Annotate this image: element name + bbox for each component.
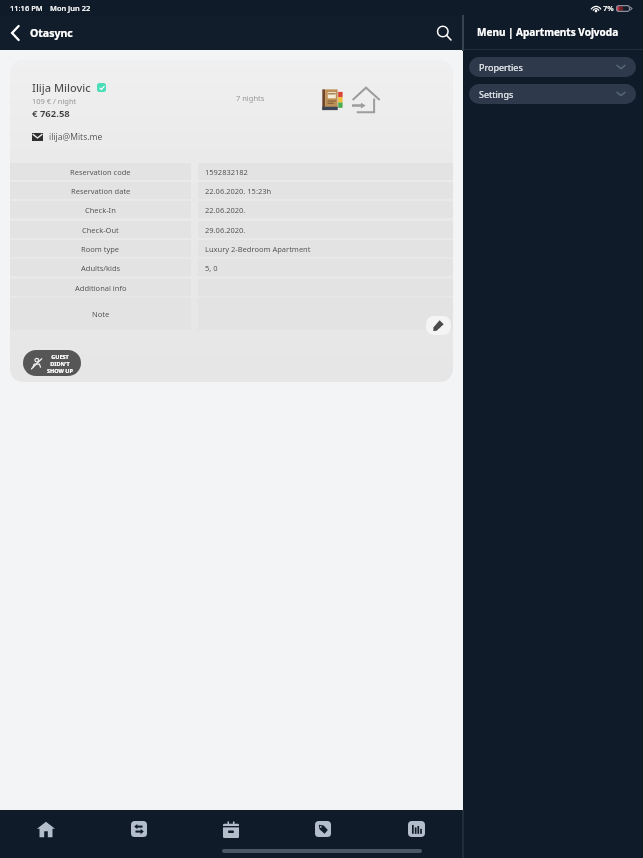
button[interactable]: Statistics <box>393 811 439 847</box>
staticText: Room type <box>81 244 120 254</box>
button[interactable]: GUEST <box>23 350 81 376</box>
button[interactable]: Back <box>0 16 30 50</box>
button[interactable]: Properties <box>469 57 636 77</box>
button[interactable]: Calendar <box>208 811 254 847</box>
staticText: Luxury 2-Bedroom Apartment <box>205 244 311 254</box>
staticText: Additional info <box>75 283 127 293</box>
staticText: Check-Out <box>82 225 119 235</box>
staticText: Menu | Apartments Vojvoda <box>477 25 619 39</box>
staticText: Otasync <box>30 26 73 40</box>
staticText: 5, 0 <box>205 263 218 273</box>
staticText: Settings <box>479 88 514 100</box>
staticText: Note <box>92 309 110 319</box>
staticText: 11:16 PM <box>10 3 43 13</box>
button[interactable]: Prices <box>300 811 346 847</box>
button[interactable]: Search <box>425 16 463 50</box>
staticText: 22.06.2020. <box>205 205 246 215</box>
staticText: Ilija Milovic <box>32 80 91 95</box>
staticText: Adults/kids <box>81 263 121 273</box>
staticText: SHOW UP <box>47 367 73 374</box>
staticText: 7% <box>603 3 614 13</box>
staticText: Reservation date <box>71 186 131 196</box>
button[interactable]: Edit note <box>426 316 451 335</box>
staticText: 29.06.2020. <box>205 225 246 235</box>
staticText: Mon Jun 22 <box>50 3 91 13</box>
staticText: Reservation code <box>70 167 131 177</box>
button[interactable]: Home <box>23 811 69 847</box>
staticText: € 762.58 <box>32 107 70 120</box>
staticText: ilija@Mits.me <box>49 131 103 143</box>
button[interactable]: Settings <box>469 84 636 104</box>
staticText: 1592832182 <box>205 167 248 177</box>
staticText: DIDN'T <box>50 360 70 367</box>
staticText: Properties <box>479 61 523 73</box>
staticText: GUEST <box>51 353 69 360</box>
button[interactable]: Sync <box>116 811 162 847</box>
staticText: Check-In <box>85 205 116 215</box>
staticText: 22.06.2020. 15:23h <box>205 186 272 196</box>
staticText: 109 € / night <box>32 96 77 106</box>
staticText: 7 nights <box>236 93 265 103</box>
